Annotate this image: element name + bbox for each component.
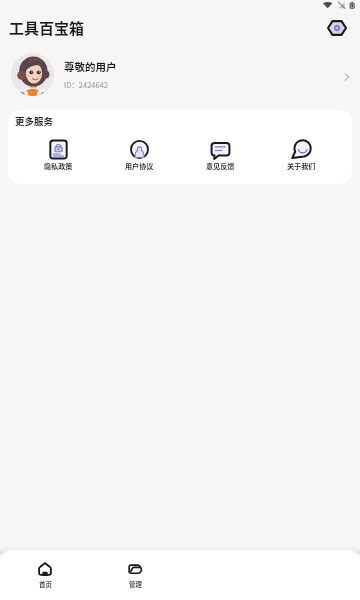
button[interactable]: 用户协议	[99, 140, 180, 171]
staticText: 管理	[129, 579, 142, 588]
staticText: 更多服务	[15, 114, 54, 128]
button[interactable]: Settings	[328, 19, 346, 37]
staticText: 首页	[39, 579, 52, 588]
button[interactable]: 隐私政策	[18, 140, 99, 171]
button[interactable]: 关于我们	[261, 140, 342, 171]
staticText: 工具百宝箱	[9, 17, 85, 39]
staticText: 意见反馈	[206, 161, 235, 171]
staticText: ID：2424642	[64, 79, 108, 90]
staticText: 用户协议	[125, 161, 154, 171]
staticText: 隐私政策	[44, 161, 73, 171]
button[interactable]: 管理	[90, 550, 180, 600]
button[interactable]: 尊敬的用户	[0, 48, 360, 101]
button[interactable]: 首页	[0, 550, 90, 600]
button[interactable]: 意见反馈	[180, 140, 261, 171]
staticText: 尊敬的用户	[64, 59, 117, 74]
staticText: 关于我们	[287, 161, 316, 171]
